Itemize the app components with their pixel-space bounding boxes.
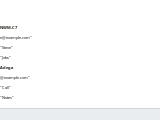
staticText: "Jobs" — [0, 55, 11, 60]
staticText: "Notes" — [0, 95, 14, 100]
staticText: e@example.com" — [0, 35, 32, 40]
staticText: Adega — [0, 65, 13, 70]
staticText: NWM-C7 — [0, 25, 17, 30]
staticText: @example.com" — [0, 75, 30, 80]
staticText: "Call" — [0, 85, 11, 90]
staticText: "Steve" — [0, 45, 13, 50]
